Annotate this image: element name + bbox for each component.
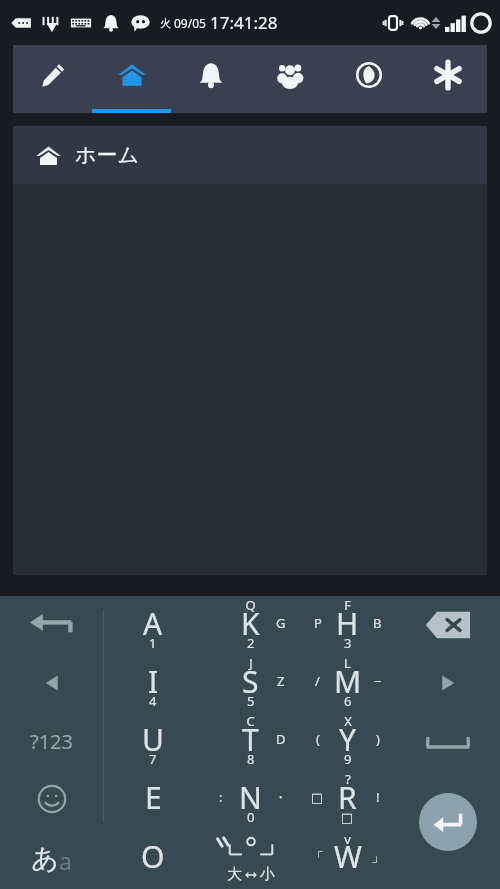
- staticText: あ: [31, 842, 59, 876]
- staticText: T: [242, 719, 259, 760]
- staticText: v: [344, 830, 351, 848]
- button[interactable]: Home: [92, 45, 171, 113]
- button[interactable]: Cursor left: [0, 654, 103, 712]
- staticText: 0: [247, 808, 255, 826]
- staticText: L: [344, 654, 351, 672]
- staticText: G: [276, 614, 286, 632]
- staticText: !: [376, 788, 380, 806]
- staticText: D: [276, 730, 286, 748]
- button[interactable]: U: [104, 712, 202, 770]
- staticText: /: [315, 672, 320, 690]
- button[interactable]: Compose: [13, 45, 92, 113]
- staticText: W: [334, 836, 362, 877]
- button[interactable]: N: [202, 770, 299, 828]
- button[interactable]: O: [104, 828, 202, 889]
- staticText: R: [338, 777, 357, 818]
- staticText: 2: [247, 634, 255, 652]
- staticText: :: [219, 788, 223, 806]
- staticText: ・: [274, 789, 287, 805]
- button[interactable]: ホーム: [13, 126, 487, 184]
- button[interactable]: W: [299, 828, 396, 889]
- staticText: 5: [247, 692, 255, 710]
- button[interactable]: Input mode: [0, 828, 103, 889]
- staticText: H: [336, 603, 359, 644]
- staticText: □: [311, 790, 324, 805]
- staticText: 「: [311, 849, 324, 865]
- staticText: 7: [149, 750, 157, 768]
- staticText: 大: [227, 865, 242, 884]
- button[interactable]: Y: [299, 712, 396, 770]
- staticText: B: [373, 614, 382, 632]
- button[interactable]: H: [299, 596, 396, 654]
- staticText: 3: [344, 634, 352, 652]
- button[interactable]: E: [104, 770, 202, 828]
- staticText: 6: [344, 692, 352, 710]
- button[interactable]: M: [299, 654, 396, 712]
- staticText: −: [374, 672, 382, 690]
- staticText: E: [145, 777, 162, 818]
- button[interactable]: R: [299, 770, 396, 828]
- button[interactable]: Cursor right: [396, 654, 500, 712]
- button[interactable]: Delete: [396, 596, 500, 654]
- button[interactable]: Public: [329, 45, 408, 113]
- staticText: a: [59, 845, 72, 876]
- staticText: □: [341, 810, 354, 825]
- button[interactable]: S: [202, 654, 299, 712]
- staticText: Z: [277, 672, 285, 690]
- button[interactable]: Space: [396, 712, 500, 770]
- staticText: 9: [344, 750, 352, 768]
- staticText: O: [141, 836, 165, 877]
- button[interactable]: Symbols: [0, 712, 103, 770]
- staticText: Y: [339, 719, 356, 760]
- staticText: X: [344, 712, 352, 730]
- button[interactable]: Backspace arrow: [0, 596, 103, 654]
- staticText: M: [334, 661, 362, 702]
- staticText: N: [239, 777, 262, 818]
- staticText: 17:41:28: [210, 11, 278, 34]
- staticText: ?123: [30, 728, 73, 755]
- button[interactable]: Groups: [250, 45, 329, 113]
- button[interactable]: I: [104, 654, 202, 712]
- staticText: I: [148, 661, 159, 702]
- staticText: ): [376, 730, 380, 748]
- staticText: ?: [345, 770, 351, 788]
- staticText: 09/05: [174, 15, 206, 31]
- staticText: (: [316, 730, 320, 748]
- button[interactable]: Emoji: [0, 770, 103, 828]
- staticText: 火: [160, 16, 171, 30]
- button[interactable]: More: [408, 45, 487, 113]
- button[interactable]: A: [104, 596, 202, 654]
- staticText: K: [241, 603, 260, 644]
- staticText: P: [314, 614, 322, 632]
- staticText: U: [142, 719, 164, 760]
- staticText: 」: [371, 849, 384, 865]
- staticText: C: [246, 712, 255, 730]
- staticText: S: [242, 661, 259, 702]
- staticText: F: [344, 596, 351, 614]
- staticText: Q: [245, 596, 256, 614]
- staticText: ホーム: [75, 142, 139, 168]
- staticText: 小: [260, 865, 275, 884]
- staticText: A: [143, 603, 163, 644]
- button[interactable]: T: [202, 712, 299, 770]
- button[interactable]: Size toggle: [202, 828, 299, 889]
- button[interactable]: K: [202, 596, 299, 654]
- staticText: J: [249, 654, 253, 672]
- staticText: 1: [149, 634, 157, 652]
- staticText: 8: [247, 750, 255, 768]
- staticText: 4: [149, 692, 157, 710]
- button[interactable]: Notifications: [171, 45, 250, 113]
- button[interactable]: Enter: [396, 770, 500, 889]
